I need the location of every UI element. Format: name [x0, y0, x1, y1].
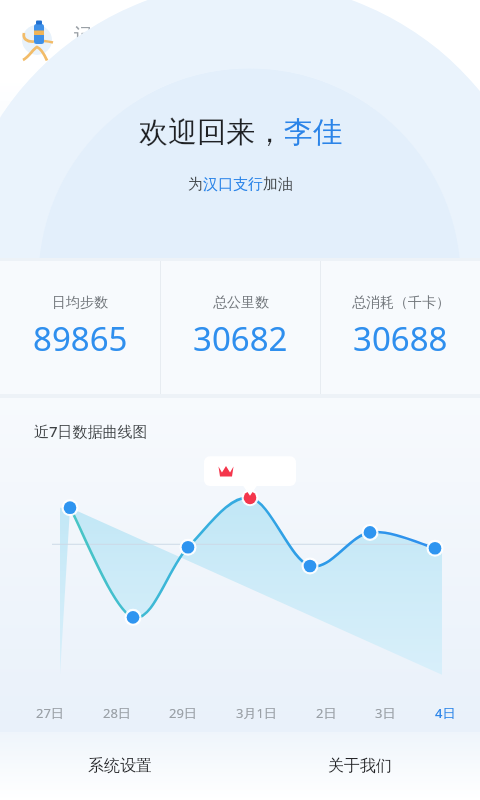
staticText: 3日 — [375, 704, 396, 722]
staticText: 89865 — [33, 316, 128, 361]
staticText: 总消耗（千卡） — [352, 294, 450, 312]
staticText: 28日 — [103, 704, 131, 722]
staticText: 3月1日 — [236, 704, 277, 722]
staticText: 29日 — [169, 704, 197, 722]
button[interactable]: 记步 — [68, 20, 116, 61]
staticText: 30688 — [353, 316, 448, 361]
button[interactable]: 关于我们 — [240, 732, 480, 800]
staticText: 系统设置 — [88, 756, 152, 776]
button[interactable]: 总消耗（千卡） — [321, 261, 480, 394]
button[interactable]: App logo — [14, 14, 64, 64]
button[interactable]: 系统设置 — [0, 732, 240, 800]
button[interactable]: 日均步数 — [0, 261, 160, 394]
staticText: 4日 — [435, 704, 456, 722]
staticText: 记步 — [74, 24, 110, 47]
staticText: 关于我们 — [328, 756, 392, 776]
staticText: 总公里数 — [213, 294, 269, 312]
staticText: 近7日数据曲线图 — [34, 421, 148, 441]
staticText: 2日 — [316, 704, 337, 722]
staticText: 30682 — [193, 316, 288, 361]
staticText: 日均步数 — [52, 294, 108, 312]
staticText: 欢迎回来，李佳 — [139, 114, 342, 151]
staticText: 为汉口支行加油 — [188, 175, 293, 194]
button[interactable]: 总公里数 — [161, 261, 320, 394]
staticText: 27日 — [36, 704, 64, 722]
